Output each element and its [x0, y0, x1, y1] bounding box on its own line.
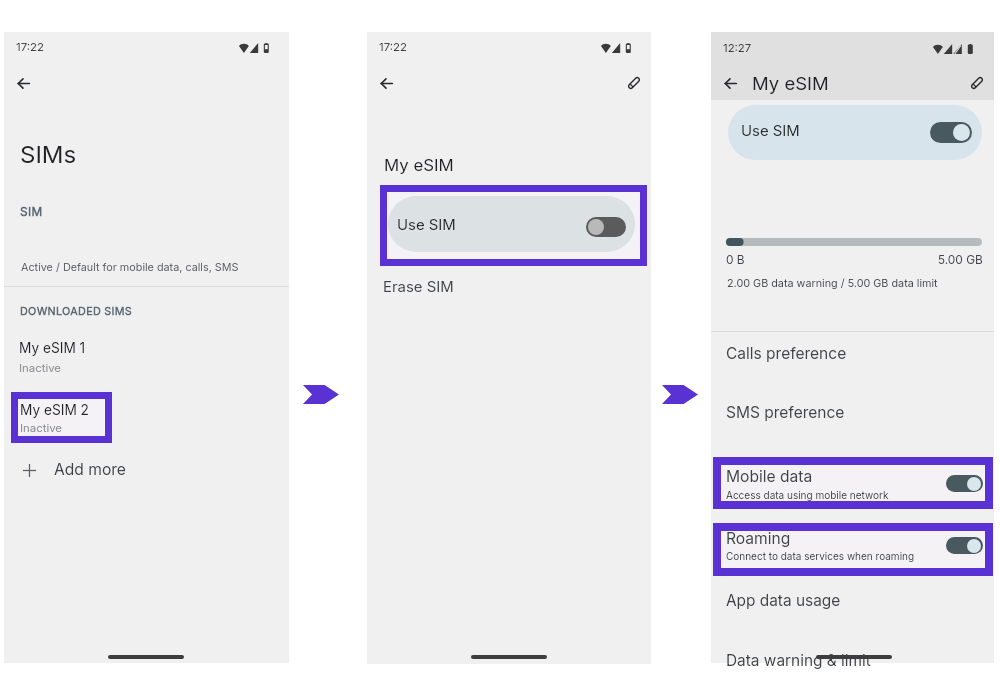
button[interactable]: Back	[372, 69, 400, 97]
other: Next step	[303, 385, 339, 404]
button[interactable]: Roaming	[720, 530, 985, 567]
staticText: Erase SIM	[383, 278, 454, 296]
button[interactable]: Back	[9, 69, 37, 97]
button[interactable]: SMS preference	[711, 398, 994, 428]
staticText: Inactive	[19, 361, 61, 375]
button[interactable]: Edit	[620, 69, 648, 97]
other: Next step	[662, 385, 698, 404]
staticText: My eSIM	[384, 155, 454, 175]
staticText: Roaming	[726, 529, 791, 548]
staticText: 12:27	[723, 41, 752, 55]
button[interactable]: Data warning & limit	[711, 645, 994, 663]
staticText: Mobile data	[726, 467, 813, 486]
staticText: Use SIM	[397, 216, 456, 234]
staticText: 5.00 GB	[938, 252, 983, 266]
staticText: Access data using mobile network	[726, 489, 889, 501]
staticText: Calls preference	[726, 344, 847, 363]
staticText: My eSIM 1	[19, 340, 86, 357]
button[interactable]: Use SIM	[728, 105, 982, 160]
staticText: SMS preference	[726, 403, 845, 422]
button[interactable]: Turn off	[946, 537, 983, 554]
staticText: 2.00 GB data warning / 5.00 GB data limi…	[727, 277, 938, 290]
staticText: Inactive	[20, 421, 62, 435]
button[interactable]: Mobile data	[720, 465, 985, 502]
button[interactable]: My eSIM 1	[4, 338, 289, 378]
staticText: App data usage	[726, 591, 841, 610]
button[interactable]: App data usage	[711, 585, 994, 615]
button[interactable]: Turn off	[930, 122, 972, 143]
staticText: My eSIM 2	[20, 402, 89, 419]
staticText: My eSIM	[752, 72, 829, 94]
staticText: 0 B	[726, 252, 745, 266]
button[interactable]: Edit	[963, 69, 991, 97]
button[interactable]: Calls preference	[711, 338, 994, 368]
staticText: SIMs	[20, 140, 77, 169]
button[interactable]: Add more	[4, 456, 289, 485]
staticText: 17:22	[16, 40, 44, 54]
button[interactable]: My eSIM 2	[18, 399, 106, 437]
staticText: Data warning & limit	[726, 651, 871, 669]
staticText: Active / Default for mobile data, calls,…	[21, 261, 239, 274]
button[interactable]: Turn off	[946, 475, 983, 492]
staticText: SIM	[20, 204, 43, 218]
button[interactable]: Back	[716, 69, 744, 97]
staticText: DOWNLOADED SIMS	[20, 305, 133, 318]
staticText: Use SIM	[741, 122, 800, 140]
staticText: 17:22	[379, 40, 407, 54]
button[interactable]: Use SIM	[388, 196, 635, 252]
button[interactable]: Turn on	[586, 217, 626, 237]
staticText: Add more	[54, 460, 126, 479]
staticText: Connect to data services when roaming	[726, 550, 915, 562]
